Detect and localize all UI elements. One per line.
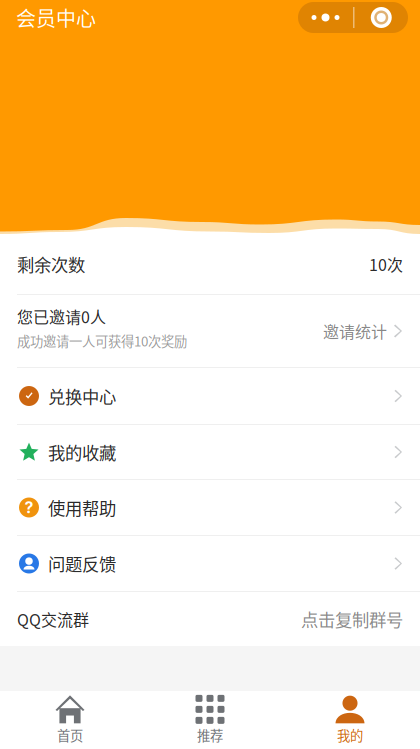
button[interactable]: 首页 xyxy=(0,691,140,749)
staticText: 使用帮助 xyxy=(48,495,116,520)
staticText: 首页 xyxy=(57,725,83,745)
staticText: 会员中心 xyxy=(16,3,96,32)
button[interactable]: 我的 xyxy=(280,691,420,749)
staticText: 剩余次数 xyxy=(17,251,85,277)
staticText: 点击复制群号 xyxy=(301,606,403,632)
staticText: 邀请统计 xyxy=(323,319,387,343)
button[interactable]: Close xyxy=(354,2,408,33)
button[interactable]: QQ交流群 xyxy=(0,592,420,646)
button[interactable]: 您已邀请0人 xyxy=(0,295,420,367)
staticText: 推荐 xyxy=(197,725,223,745)
button[interactable]: More xyxy=(298,2,353,33)
staticText: QQ交流群 xyxy=(17,607,89,631)
staticText: ? xyxy=(24,498,33,517)
staticText: 问题反馈 xyxy=(48,551,116,576)
staticText: 10次 xyxy=(369,252,403,276)
staticText: 兑换中心 xyxy=(48,383,116,409)
button[interactable]: 兑换中心 xyxy=(0,368,420,424)
button[interactable]: 我的收藏 xyxy=(0,425,420,479)
staticText: 我的 xyxy=(337,725,363,745)
button[interactable]: 问题反馈 xyxy=(0,536,420,591)
button[interactable]: 推荐 xyxy=(140,691,280,749)
staticText: 我的收藏 xyxy=(48,439,116,465)
staticText: 您已邀请0人 xyxy=(17,305,106,328)
staticText: 成功邀请一人可获得10次奖励 xyxy=(17,331,187,350)
button[interactable]: ? xyxy=(0,480,420,535)
